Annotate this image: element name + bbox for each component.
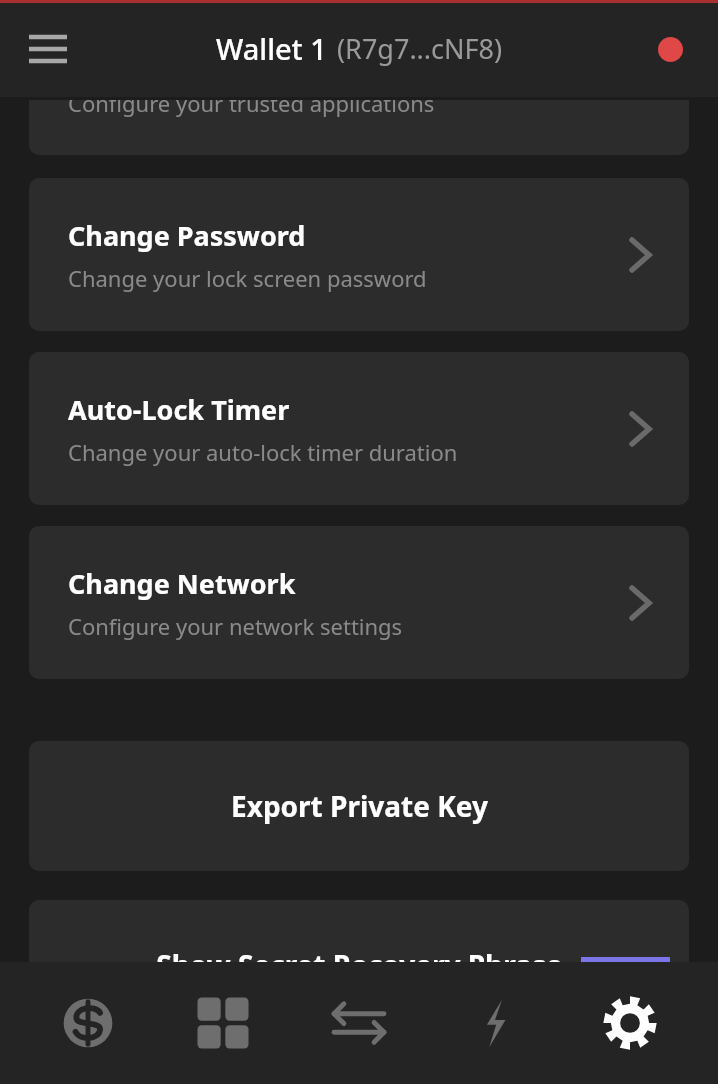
staticText: Change Network	[68, 565, 296, 602]
button[interactable]: Menu	[20, 21, 76, 77]
button[interactable]: Connection status	[648, 27, 692, 71]
staticText: Configure your network settings	[68, 611, 403, 641]
button[interactable]: Settings	[582, 962, 678, 1084]
button[interactable]: Balance	[40, 962, 136, 1084]
button[interactable]: Auto-Lock Timer	[29, 352, 689, 505]
staticText: Show Secret Recovery Phrase	[156, 946, 563, 984]
button[interactable]: Configure your trusted applications	[29, 100, 689, 155]
button[interactable]: Export Private Key	[29, 741, 689, 871]
staticText: Wallet 1	[216, 29, 327, 68]
button[interactable]: Apps	[175, 962, 271, 1084]
staticText: (R7g7...cNF8)	[337, 30, 503, 67]
staticText: Auto-Lock Timer	[68, 391, 290, 428]
staticText: Change your lock screen password	[68, 263, 427, 293]
button[interactable]: Change Network	[29, 526, 689, 679]
staticText: Configure your trusted applications	[68, 100, 435, 118]
button[interactable]: Show Secret Recovery Phrase	[29, 900, 689, 1030]
staticText: Export Private Key	[231, 787, 488, 825]
button[interactable]: Swap	[311, 962, 407, 1084]
staticText: Change Password	[68, 217, 306, 254]
button[interactable]: Activity	[447, 962, 543, 1084]
staticText: Change your auto-lock timer duration	[68, 437, 458, 467]
button[interactable]: Change Password	[29, 178, 689, 331]
